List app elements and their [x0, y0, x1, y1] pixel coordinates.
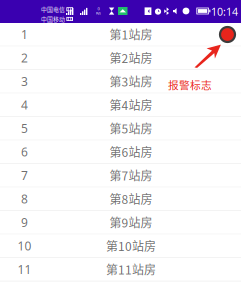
staticText: 第1站房	[109, 26, 152, 43]
button[interactable]: 5	[0, 117, 241, 140]
staticText: 11	[17, 261, 31, 277]
button[interactable]: 4	[0, 93, 241, 116]
staticText: 10:14	[211, 4, 238, 19]
staticText: 第11站房	[106, 261, 156, 278]
staticText: 第7站房	[109, 167, 152, 184]
staticText: 5	[21, 120, 28, 136]
button[interactable]: 11	[0, 258, 241, 281]
staticText: 第2站房	[109, 49, 152, 67]
staticText: 1	[21, 26, 28, 42]
button[interactable]: 8	[0, 187, 241, 210]
staticText: 0	[97, 6, 99, 11]
button[interactable]: 7	[0, 164, 241, 187]
staticText: 8	[21, 191, 28, 207]
staticText: 第9站房	[109, 214, 152, 231]
staticText: 6	[21, 144, 28, 160]
staticText: K/s	[96, 10, 101, 16]
staticText: 第8站房	[109, 190, 152, 208]
staticText: 10	[17, 238, 31, 254]
staticText: 7	[21, 167, 28, 183]
staticText: 2	[21, 50, 28, 66]
button[interactable]: 10	[0, 234, 241, 257]
staticText: 4	[21, 97, 28, 113]
staticText: 中国移动	[41, 15, 65, 23]
staticText: 中国电信	[41, 5, 65, 13]
staticText: 第4站房	[109, 96, 152, 114]
staticText: 第10站房	[106, 237, 156, 255]
button[interactable]: 3	[0, 70, 241, 93]
staticText: 3	[21, 73, 28, 89]
staticText: 第6站房	[109, 143, 152, 161]
staticText: 第3站房	[109, 73, 152, 90]
button[interactable]: 6	[0, 140, 241, 163]
button[interactable]: 2	[0, 46, 241, 69]
button[interactable]: 1	[0, 23, 241, 46]
staticText: 报警标志	[168, 77, 212, 92]
button[interactable]: 9	[0, 211, 241, 234]
staticText: 第5站房	[109, 120, 152, 137]
staticText: 9	[21, 214, 28, 230]
